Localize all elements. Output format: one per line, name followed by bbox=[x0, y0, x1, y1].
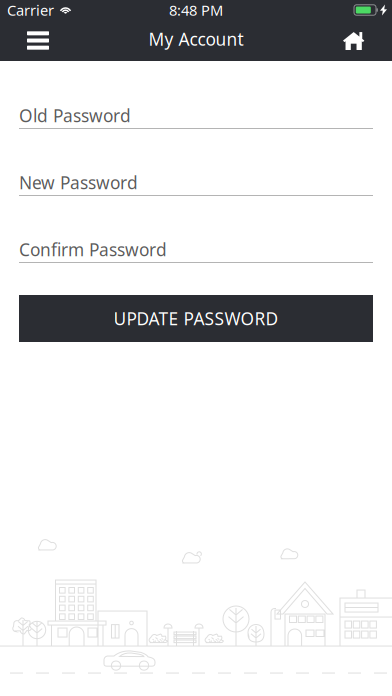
button[interactable]: Menu bbox=[0, 20, 64, 61]
button[interactable]: UPDATE PASSWORD bbox=[19, 295, 373, 342]
staticText: 8:48 PM bbox=[169, 0, 223, 20]
staticText: Confirm Password bbox=[19, 238, 167, 261]
staticText: Old Password bbox=[19, 104, 131, 127]
staticText: My Account bbox=[148, 27, 243, 50]
button[interactable]: Home bbox=[326, 20, 392, 61]
staticText: Carrier bbox=[7, 0, 54, 20]
staticText: New Password bbox=[19, 171, 138, 194]
staticText: UPDATE PASSWORD bbox=[113, 307, 278, 330]
